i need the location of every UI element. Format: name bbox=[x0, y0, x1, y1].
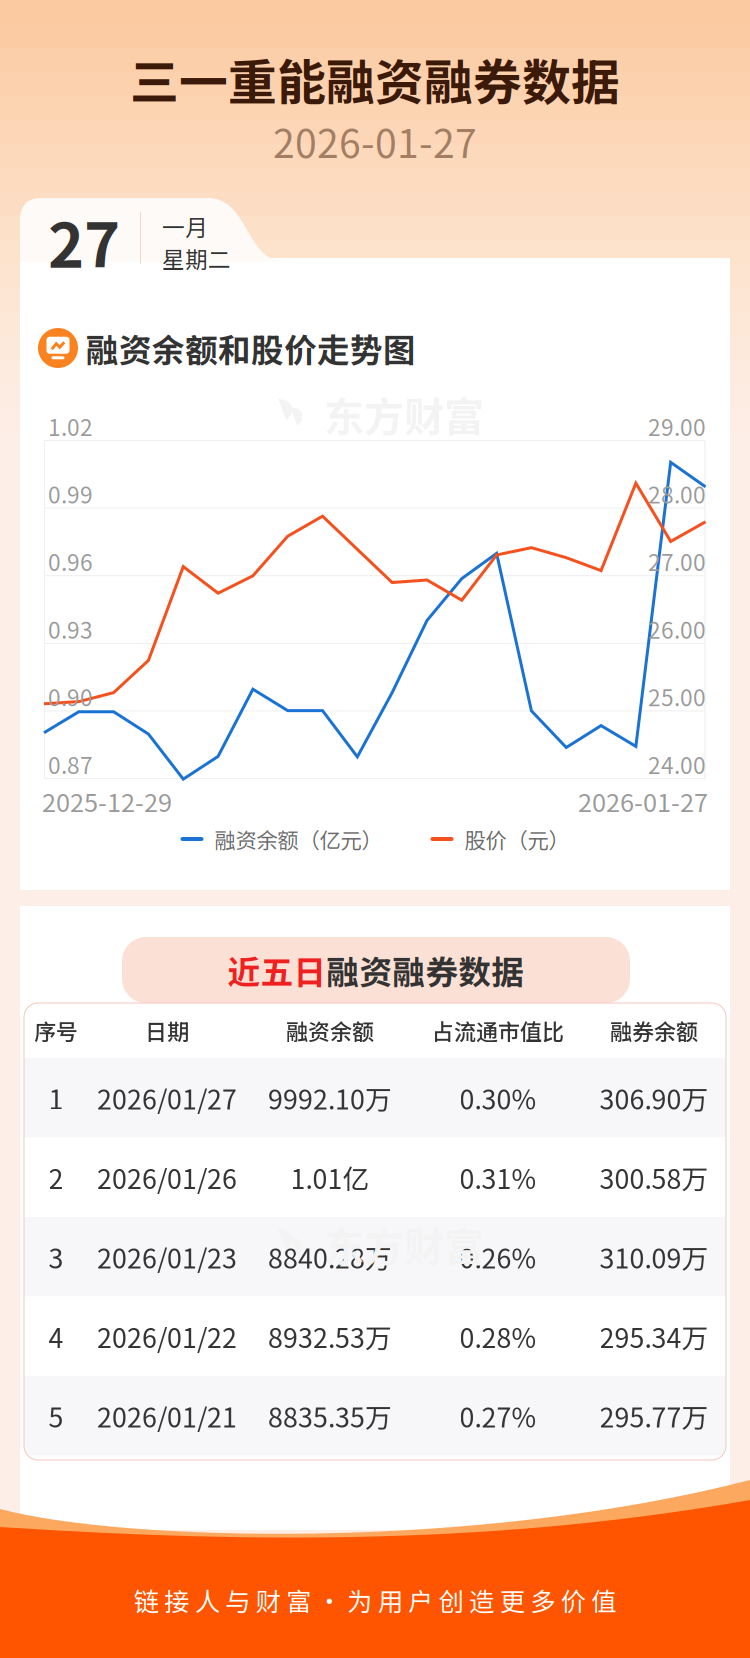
staticText: 0.96 bbox=[48, 545, 93, 578]
staticText: 295.77万 bbox=[599, 1396, 708, 1435]
staticText: 3 bbox=[48, 1237, 63, 1276]
staticText: 27.00 bbox=[648, 545, 706, 578]
staticText: 28.00 bbox=[648, 477, 706, 510]
staticText: 25.00 bbox=[648, 680, 706, 713]
staticText: 0.87 bbox=[48, 748, 93, 780]
staticText: 310.09万 bbox=[599, 1237, 708, 1276]
staticText: 1.01亿 bbox=[290, 1158, 369, 1196]
staticText: 8840.28万 bbox=[268, 1237, 392, 1276]
staticText: 0.27% bbox=[459, 1396, 536, 1435]
staticText: 2026/01/21 bbox=[97, 1396, 237, 1435]
staticText: 295.34万 bbox=[599, 1317, 708, 1355]
staticText: 9992.10万 bbox=[268, 1078, 392, 1117]
staticText: 2026/01/23 bbox=[97, 1237, 237, 1276]
staticText: 24.00 bbox=[648, 748, 706, 780]
staticText: 2026/01/22 bbox=[97, 1317, 237, 1355]
staticText: 链接人与财富·为用户创造更多价值 bbox=[134, 1582, 616, 1618]
staticText: 2026/01/27 bbox=[97, 1078, 237, 1117]
staticText: 0.93 bbox=[48, 612, 93, 645]
staticText: 1 bbox=[48, 1078, 63, 1117]
staticText: 一月 bbox=[162, 210, 208, 242]
staticText: 融资余额和股价走势图 bbox=[86, 324, 416, 371]
staticText: 股价（元） bbox=[464, 824, 569, 854]
staticText: 融资融券数据 bbox=[326, 946, 524, 994]
staticText: 0.31% bbox=[459, 1158, 536, 1196]
staticText: 8932.53万 bbox=[268, 1317, 392, 1355]
staticText: 4 bbox=[48, 1317, 63, 1355]
staticText: 日期 bbox=[145, 1015, 189, 1046]
staticText: 星期二 bbox=[162, 242, 231, 274]
staticText: 2026-01-27 bbox=[273, 113, 477, 169]
staticText: 三一重能融资融券数据 bbox=[130, 44, 620, 114]
staticText: 1.02 bbox=[48, 410, 93, 442]
staticText: 0.99 bbox=[48, 477, 93, 510]
staticText: 2026-01-27 bbox=[578, 783, 708, 819]
staticText: 序号 bbox=[34, 1015, 78, 1046]
staticText: 0.26% bbox=[459, 1237, 536, 1276]
staticText: 融资余额（亿元） bbox=[214, 824, 382, 854]
staticText: 8835.35万 bbox=[268, 1396, 392, 1435]
staticText: 融资余额 bbox=[286, 1015, 374, 1046]
staticText: 占流通市值比 bbox=[432, 1015, 564, 1046]
staticText: 近五日 bbox=[227, 946, 326, 994]
staticText: 27 bbox=[48, 197, 120, 285]
staticText: 29.00 bbox=[648, 410, 706, 442]
staticText: 东方财富 bbox=[324, 1215, 484, 1273]
staticText: 5 bbox=[48, 1396, 63, 1435]
staticText: 0.30% bbox=[459, 1078, 536, 1117]
staticText: 0.28% bbox=[459, 1317, 536, 1355]
staticText: 0.90 bbox=[48, 680, 93, 713]
staticText: 2026/01/26 bbox=[97, 1158, 237, 1196]
staticText: 300.58万 bbox=[599, 1158, 708, 1196]
staticText: 306.90万 bbox=[599, 1078, 708, 1117]
staticText: 26.00 bbox=[648, 612, 706, 645]
staticText: 2025-12-29 bbox=[42, 783, 172, 819]
staticText: 2 bbox=[48, 1158, 63, 1196]
staticText: 东方财富 bbox=[324, 385, 484, 443]
staticText: 融券余额 bbox=[610, 1015, 698, 1046]
